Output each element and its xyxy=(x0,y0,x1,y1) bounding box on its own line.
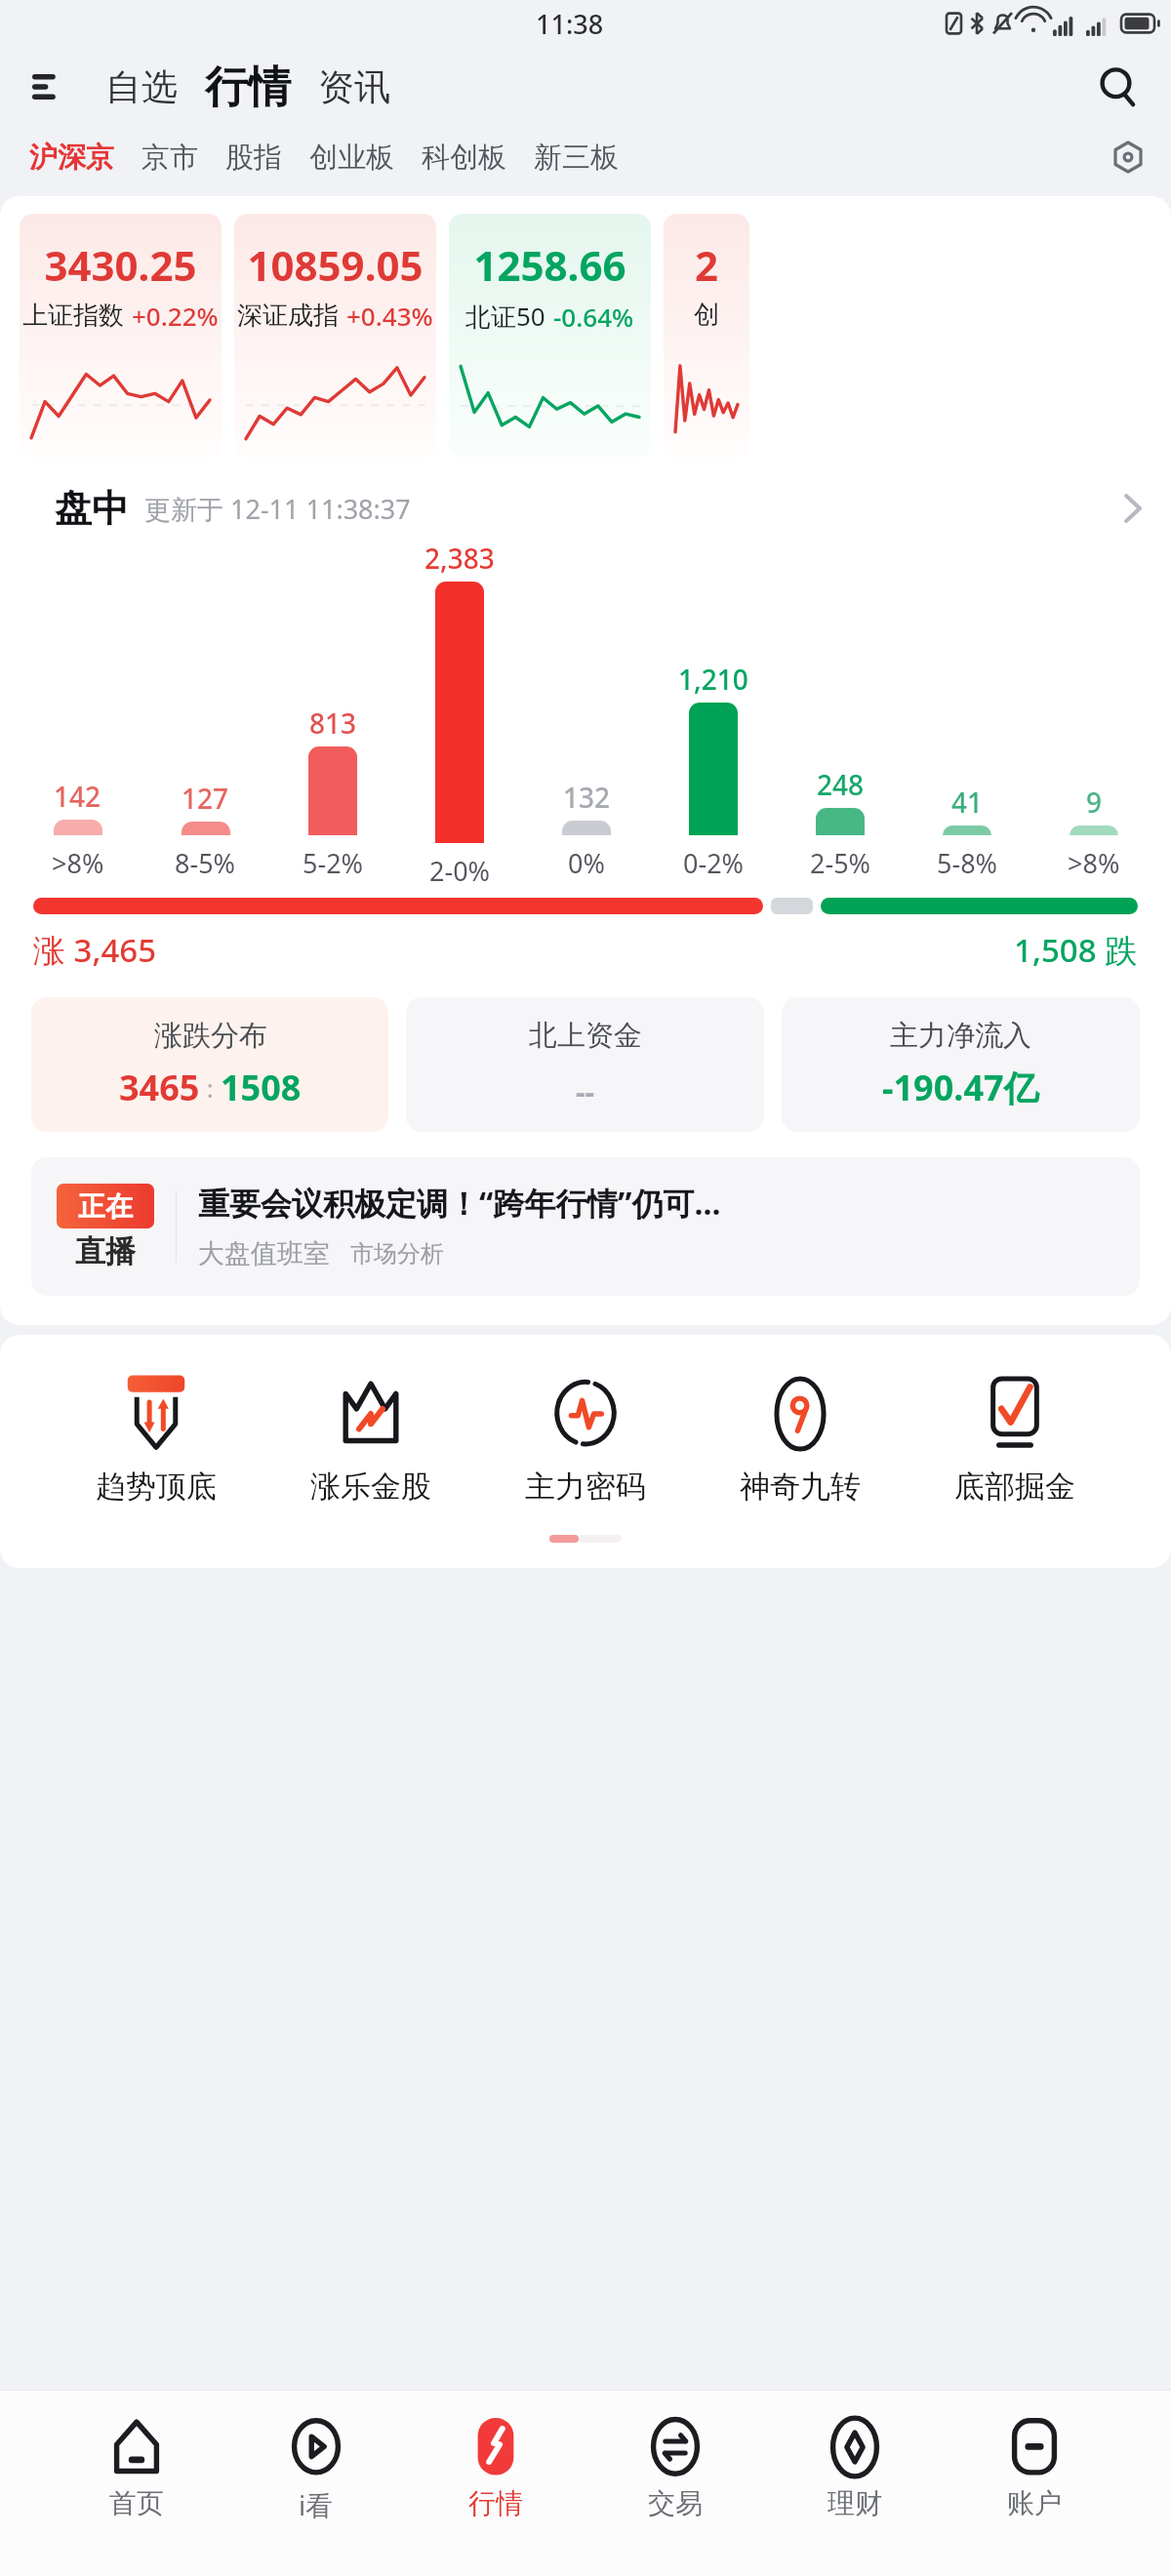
staticText: 0% xyxy=(568,845,605,881)
staticText: -190.47亿 xyxy=(882,1064,1039,1111)
staticText: 大盘值班室 xyxy=(198,1237,330,1270)
staticText: 主力净流入 xyxy=(890,1018,1031,1054)
staticText: 行情 xyxy=(468,2486,523,2520)
button[interactable]: 趋势顶底 xyxy=(88,1368,224,1509)
staticText: 首页 xyxy=(109,2486,164,2520)
staticText: 趋势顶底 xyxy=(96,1468,217,1506)
staticText: >8% xyxy=(52,845,104,881)
staticText: 1258.66 xyxy=(449,237,651,293)
staticText: 更新于 12-11 11:38:37 xyxy=(144,491,411,527)
staticText: 10859.05 xyxy=(234,237,436,293)
staticText: 涨乐金股 xyxy=(310,1468,431,1506)
button[interactable]: 涨乐金股 xyxy=(303,1368,439,1509)
staticText: 重要会议积极定调！“跨年行情”仍可... xyxy=(198,1182,721,1225)
button[interactable]: 科创板 xyxy=(408,132,520,183)
staticText: 0-2% xyxy=(683,845,745,881)
button[interactable]: 交易 xyxy=(632,2391,718,2520)
staticText: 账户 xyxy=(1007,2486,1062,2520)
button[interactable]: 涨跌分布 xyxy=(31,997,388,1132)
staticText: 资讯 xyxy=(318,64,390,110)
button[interactable]: 行情 xyxy=(453,2391,539,2520)
staticText: 813 xyxy=(309,704,357,742)
button[interactable]: 账户 xyxy=(991,2391,1077,2520)
button[interactable]: Settings xyxy=(1103,132,1153,182)
button[interactable]: i看 xyxy=(273,2391,359,2523)
staticText: 股指 xyxy=(225,140,282,176)
button[interactable]: 正在 xyxy=(31,1157,1140,1296)
staticText: 142 xyxy=(54,778,101,815)
staticText: 深证成指 xyxy=(237,300,339,332)
staticText: 京市 xyxy=(141,140,198,176)
staticText: 2,383 xyxy=(424,540,495,577)
staticText: 盘中 xyxy=(55,485,129,532)
staticText: 2-0% xyxy=(429,853,491,881)
staticText: 上证指数 xyxy=(22,300,124,332)
staticText: 11:38 xyxy=(536,6,604,42)
staticText: 新三板 xyxy=(534,140,619,176)
staticText: 3430.25 xyxy=(20,237,222,293)
button[interactable]: 首页 xyxy=(94,2391,180,2520)
staticText: 直播 xyxy=(75,1232,136,1270)
staticText: 科创板 xyxy=(422,140,506,176)
staticText: -- xyxy=(576,1071,595,1111)
staticText: +0.43% xyxy=(346,299,433,333)
button[interactable]: 自选 xyxy=(96,57,187,118)
button[interactable]: Menu xyxy=(20,58,78,116)
button[interactable]: 1258.66 xyxy=(449,214,651,458)
staticText: 北上资金 xyxy=(529,1018,642,1054)
staticText: 正在 xyxy=(78,1189,133,1224)
staticText: 9 xyxy=(1086,784,1103,821)
button[interactable]: 2 xyxy=(664,214,749,458)
button[interactable]: 主力净流入 xyxy=(782,997,1140,1132)
staticText: 主力密码 xyxy=(525,1468,646,1506)
staticText: 行情 xyxy=(205,60,291,114)
staticText: 1,210 xyxy=(678,661,748,698)
staticText: 交易 xyxy=(648,2486,703,2520)
button[interactable]: 北上资金 xyxy=(406,997,764,1132)
button[interactable]: 资讯 xyxy=(308,57,400,118)
staticText: -0.64% xyxy=(553,300,634,334)
staticText: 沪深京 xyxy=(29,140,114,176)
staticText: 3465 xyxy=(119,1064,200,1111)
button[interactable]: 盘中 xyxy=(0,477,1171,540)
staticText: 涨 3,465 xyxy=(33,928,157,972)
button[interactable]: 新三板 xyxy=(520,132,632,183)
button[interactable]: 神奇九转 xyxy=(732,1368,868,1509)
button[interactable]: Search xyxy=(1087,56,1150,118)
staticText: 自选 xyxy=(105,64,178,110)
staticText: 涨跌分布 xyxy=(154,1018,267,1054)
staticText: 底部掘金 xyxy=(954,1468,1075,1506)
staticText: 248 xyxy=(817,766,865,803)
staticText: : xyxy=(200,1070,221,1105)
staticText: +0.22% xyxy=(132,299,219,333)
staticText: 5-2% xyxy=(303,845,364,881)
button[interactable]: 京市 xyxy=(128,132,212,183)
staticText: 创 xyxy=(694,299,719,331)
staticText: 理财 xyxy=(828,2486,882,2520)
staticText: 北证50 xyxy=(465,299,545,334)
staticText: 2-5% xyxy=(810,845,871,881)
button[interactable]: 底部掘金 xyxy=(947,1368,1083,1509)
staticText: 神奇九转 xyxy=(740,1468,861,1506)
button[interactable]: 创业板 xyxy=(296,132,408,183)
staticText: i看 xyxy=(299,2486,334,2523)
button[interactable]: 股指 xyxy=(212,132,296,183)
button[interactable]: 理财 xyxy=(812,2391,898,2520)
staticText: 市场分析 xyxy=(350,1239,444,1268)
staticText: 8-5% xyxy=(175,845,236,881)
button[interactable]: 行情 xyxy=(195,53,301,122)
button[interactable]: 10859.05 xyxy=(234,214,436,458)
staticText: >8% xyxy=(1068,845,1120,881)
button[interactable]: 主力密码 xyxy=(517,1368,654,1509)
button[interactable]: 沪深京 xyxy=(16,132,128,183)
staticText: 1508 xyxy=(221,1064,302,1111)
staticText: 2 xyxy=(664,237,749,293)
button[interactable]: 3430.25 xyxy=(20,214,222,458)
staticText: 132 xyxy=(563,779,611,816)
staticText: 127 xyxy=(182,780,229,817)
staticText: 1,508 跌 xyxy=(1014,928,1138,972)
staticText: 创业板 xyxy=(309,140,394,176)
staticText: 5-8% xyxy=(937,845,998,881)
staticText: 41 xyxy=(951,784,984,821)
